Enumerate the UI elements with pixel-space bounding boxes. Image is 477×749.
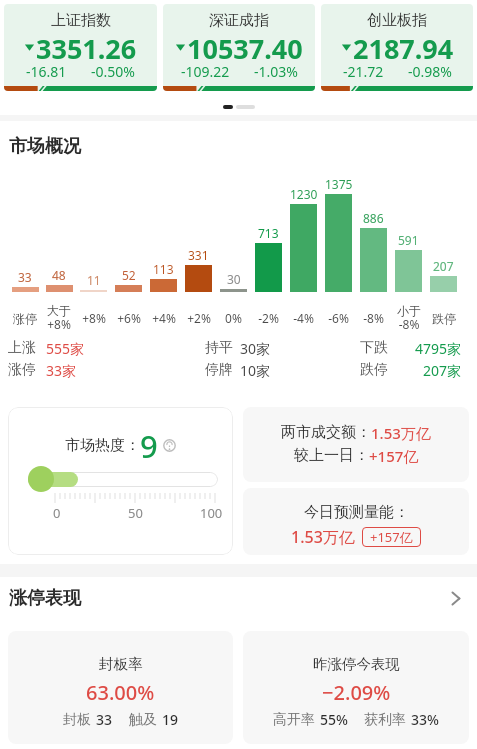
- staticText: 30家: [240, 339, 271, 358]
- staticText: 33家: [46, 361, 77, 380]
- staticText: +4%: [152, 310, 176, 326]
- button[interactable]: 封板率: [8, 631, 233, 744]
- staticText: 3351.26: [36, 30, 137, 62]
- staticText: 52: [122, 267, 136, 283]
- staticText: -6%: [328, 310, 349, 326]
- staticText: -4%: [293, 310, 314, 326]
- staticText: 11: [87, 272, 101, 288]
- staticText: 涨停: [8, 361, 36, 379]
- staticText: 涨停表现: [9, 587, 81, 610]
- staticText: 1230: [290, 186, 318, 202]
- staticText: 下跌: [360, 339, 388, 357]
- staticText: 封板: [63, 711, 91, 729]
- button[interactable]: 两市成交额：: [243, 407, 469, 482]
- staticText: 市场概况: [9, 135, 81, 158]
- staticText: 昨涨停今表现: [313, 655, 400, 673]
- button[interactable]: 市场热度：: [8, 407, 233, 555]
- staticText: 9: [140, 425, 158, 466]
- staticText: 19: [162, 710, 179, 729]
- staticText: 591: [398, 232, 419, 248]
- staticText: 331: [188, 247, 209, 263]
- staticText: 2187.94: [353, 30, 454, 62]
- staticText: -109.22: [181, 62, 230, 81]
- staticText: +157亿: [369, 446, 419, 466]
- staticText: +8%: [82, 310, 106, 326]
- staticText: 33: [18, 269, 32, 285]
- staticText: 10家: [240, 361, 271, 380]
- staticText: 市场热度：: [65, 436, 140, 455]
- button[interactable]: 昨涨停今表现: [243, 631, 469, 744]
- button[interactable]: 涨停表现: [9, 587, 468, 610]
- staticText: -21.72: [343, 62, 384, 81]
- staticText: -0.98%: [408, 62, 452, 81]
- staticText: 63.00%: [86, 679, 155, 706]
- staticText: 获利率: [364, 711, 406, 729]
- staticText: 1.53万亿: [291, 526, 355, 548]
- staticText: 持平: [205, 339, 233, 357]
- staticText: 30: [227, 271, 241, 287]
- staticText: 0: [53, 504, 61, 522]
- staticText: 1375: [325, 176, 353, 192]
- staticText: +6%: [117, 310, 141, 326]
- staticText: 1.53万亿: [371, 423, 431, 443]
- button[interactable]: 今日预测量能：: [243, 488, 469, 555]
- staticText: 207: [433, 258, 454, 274]
- staticText: -8%: [363, 310, 384, 326]
- staticText: 4795家: [415, 339, 462, 358]
- staticText: 封板率: [99, 655, 143, 673]
- button[interactable]: 上证指数: [4, 4, 157, 91]
- staticText: 10537.40: [187, 30, 303, 62]
- staticText: 触及: [129, 711, 157, 729]
- staticText: 48: [52, 267, 66, 283]
- staticText: -1.03%: [254, 62, 298, 81]
- staticText: 跌停: [432, 311, 456, 326]
- staticText: 100: [200, 504, 223, 522]
- button[interactable]: 创业板指: [321, 4, 473, 91]
- staticText: 713: [258, 225, 279, 241]
- staticText: 50: [128, 504, 143, 522]
- staticText: +157亿: [370, 528, 413, 546]
- staticText: 高开率: [273, 711, 315, 729]
- staticText: 555家: [46, 339, 85, 358]
- staticText: 33: [96, 710, 113, 729]
- staticText: 今日预测量能：: [304, 503, 409, 522]
- staticText: 207家: [423, 361, 462, 380]
- staticText: 小于 -8%: [397, 303, 421, 333]
- staticText: 两市成交额：: [281, 423, 371, 442]
- staticText: 33%: [411, 710, 439, 729]
- staticText: +2%: [187, 310, 211, 326]
- staticText: 55%: [320, 710, 348, 729]
- staticText: 上证指数: [51, 11, 111, 30]
- staticText: −2.09%: [322, 679, 391, 706]
- button[interactable]: 深证成指: [163, 4, 315, 91]
- staticText: -2%: [258, 310, 279, 326]
- staticText: 113: [153, 261, 174, 277]
- staticText: 0%: [225, 310, 242, 326]
- staticText: 上涨: [8, 339, 36, 357]
- staticText: -16.81: [26, 62, 67, 81]
- staticText: 跌停: [360, 361, 388, 379]
- staticText: 大于 +8%: [47, 303, 71, 333]
- staticText: 涨停: [13, 311, 37, 326]
- staticText: 创业板指: [367, 11, 427, 30]
- staticText: 深证成指: [209, 11, 269, 30]
- staticText: 停牌: [205, 361, 233, 379]
- staticText: 886: [363, 210, 384, 226]
- staticText: -0.50%: [91, 62, 135, 81]
- staticText: 较上一日：: [294, 446, 369, 465]
